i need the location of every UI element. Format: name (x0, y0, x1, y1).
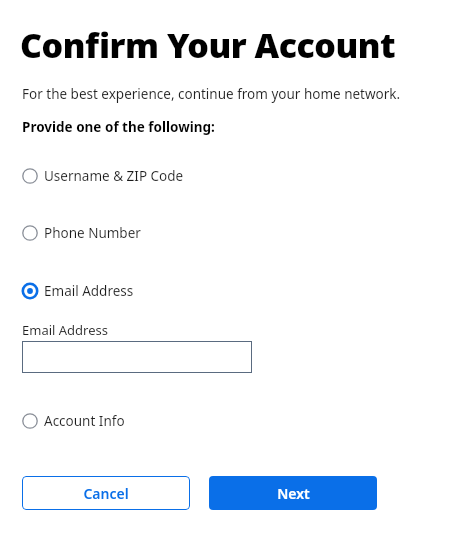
staticText: Provide one of the following: (22, 118, 215, 136)
button[interactable]: Phone Number (22, 220, 322, 246)
staticText: Confirm Your Account (20, 22, 396, 68)
staticText: Cancel (83, 484, 129, 503)
staticText: Email Address (44, 282, 134, 300)
staticText: Username & ZIP Code (44, 167, 184, 185)
button[interactable]: Email Address (22, 278, 322, 304)
button[interactable]: Username & ZIP Code (22, 163, 322, 189)
button[interactable]: Next (209, 476, 377, 510)
staticText: Email Address (22, 321, 108, 339)
staticText: Account Info (44, 412, 125, 430)
staticText: For the best experience, continue from y… (22, 85, 401, 103)
button[interactable]: Account Info (22, 408, 322, 434)
button[interactable]: Email Address input (22, 341, 252, 373)
staticText: Phone Number (44, 224, 141, 242)
staticText: Next (277, 484, 310, 503)
button[interactable]: Cancel (22, 476, 190, 510)
